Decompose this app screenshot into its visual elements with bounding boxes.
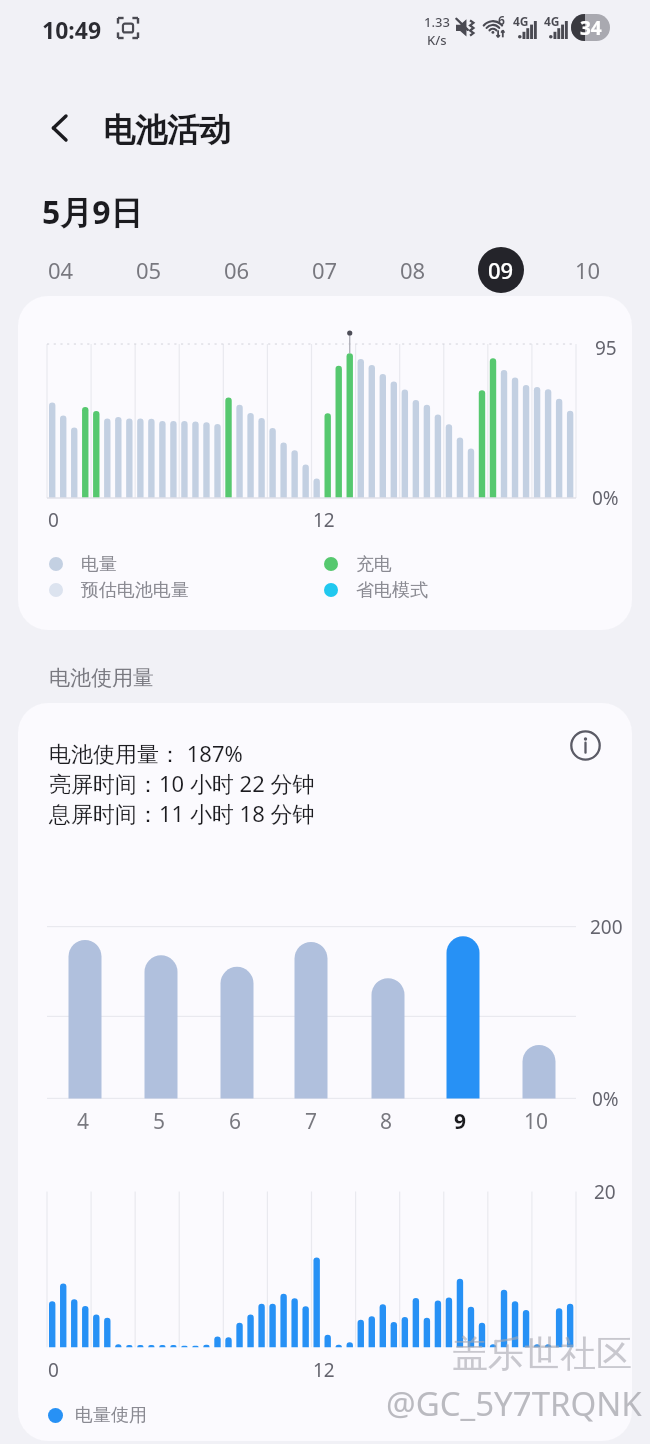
- staticText: 电池使用量: [49, 665, 154, 691]
- staticText: 95: [595, 335, 617, 361]
- button[interactable]: 08: [390, 247, 436, 293]
- staticText: 4G: [544, 13, 560, 29]
- staticText: 0%: [592, 485, 619, 511]
- staticText: 0: [48, 1357, 59, 1383]
- staticText: 充电: [356, 553, 392, 576]
- staticText: 电池使用量： 187%: [49, 738, 243, 768]
- button[interactable]: 10: [565, 247, 611, 293]
- staticText: 6: [498, 12, 505, 28]
- staticText: 0%: [592, 1086, 619, 1112]
- staticText: 5月9日: [42, 190, 143, 234]
- staticText: 20: [594, 1179, 616, 1205]
- staticText: 电量使用: [75, 1404, 147, 1427]
- button[interactable]: 04: [38, 247, 84, 293]
- staticText: 6: [229, 1107, 242, 1136]
- staticText: 4: [77, 1107, 90, 1136]
- button[interactable]: Back: [34, 102, 86, 154]
- staticText: 8: [380, 1107, 393, 1136]
- staticText: 1.33: [424, 13, 450, 31]
- staticText: 10: [575, 255, 601, 285]
- staticText: 34: [580, 15, 602, 41]
- staticText: 盖乐世社区: [452, 1331, 632, 1376]
- staticText: 电量: [81, 553, 117, 576]
- button[interactable]: Info: [563, 723, 607, 767]
- staticText: 7: [305, 1107, 318, 1136]
- staticText: 预估电池电量: [81, 579, 189, 602]
- button[interactable]: 07: [302, 247, 348, 293]
- staticText: 200: [590, 914, 623, 940]
- staticText: @GC_5Y7TRQNK: [386, 1381, 642, 1426]
- staticText: 12: [313, 507, 335, 533]
- staticText: 10: [524, 1107, 549, 1136]
- staticText: 9: [454, 1107, 467, 1136]
- staticText: 12: [313, 1357, 335, 1383]
- staticText: 息屏时间：11 小时 18 分钟: [49, 798, 315, 828]
- staticText: 08: [400, 255, 426, 285]
- staticText: 0: [48, 507, 59, 533]
- staticText: 09: [488, 255, 514, 285]
- staticText: 05: [136, 255, 162, 285]
- staticText: K/s: [427, 31, 447, 49]
- staticText: 5: [153, 1107, 166, 1136]
- staticText: 电池活动: [103, 110, 231, 150]
- staticText: 07: [312, 255, 338, 285]
- button[interactable]: 06: [214, 247, 260, 293]
- staticText: 亮屏时间：10 小时 22 分钟: [49, 768, 315, 798]
- button[interactable]: 09: [478, 247, 524, 293]
- staticText: 06: [224, 255, 250, 285]
- staticText: 4G: [513, 13, 529, 29]
- button[interactable]: 05: [126, 247, 172, 293]
- staticText: 省电模式: [356, 579, 428, 602]
- staticText: 10:49: [42, 14, 102, 45]
- staticText: 04: [48, 255, 74, 285]
